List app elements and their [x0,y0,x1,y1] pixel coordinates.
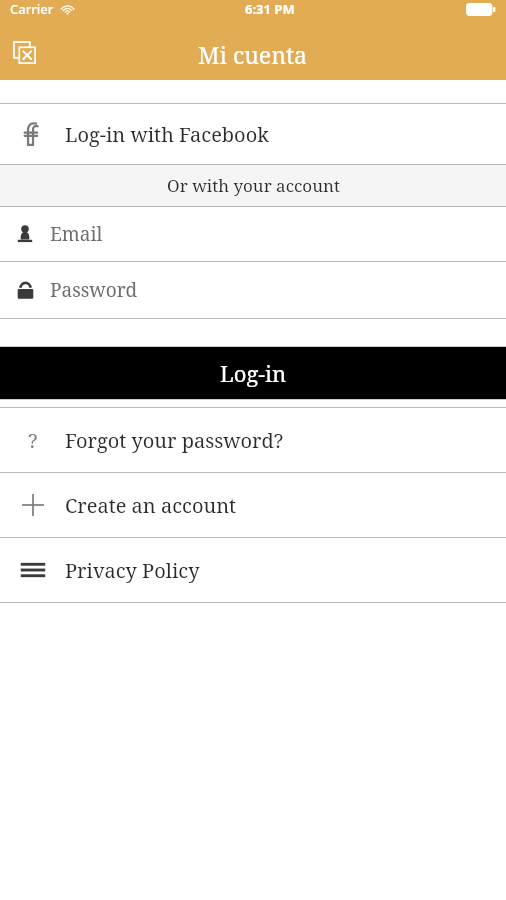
staticText: ? [28,427,38,453]
staticText: Forgot your password? [65,427,284,454]
button[interactable]: Privacy Policy [0,538,506,602]
staticText: Log-in [220,358,287,388]
staticText: Email [50,221,103,247]
button[interactable]: Log-in with Facebook [0,104,506,164]
staticText: Log-in with Facebook [65,121,269,148]
staticText: 6:31 PM [245,0,295,18]
button[interactable]: ? [0,408,506,472]
staticText: Create an account [65,492,237,519]
staticText: Privacy Policy [65,557,200,584]
button[interactable]: Password [0,262,506,318]
button[interactable]: Email [0,207,506,261]
button[interactable]: Log-in [0,347,506,399]
button[interactable]: Close [6,34,46,74]
staticText: Or with your account [167,174,340,197]
button[interactable]: Create an account [0,473,506,537]
staticText: Mi cuenta [198,39,308,70]
staticText: Password [50,277,138,303]
staticText: Carrier [10,0,54,18]
